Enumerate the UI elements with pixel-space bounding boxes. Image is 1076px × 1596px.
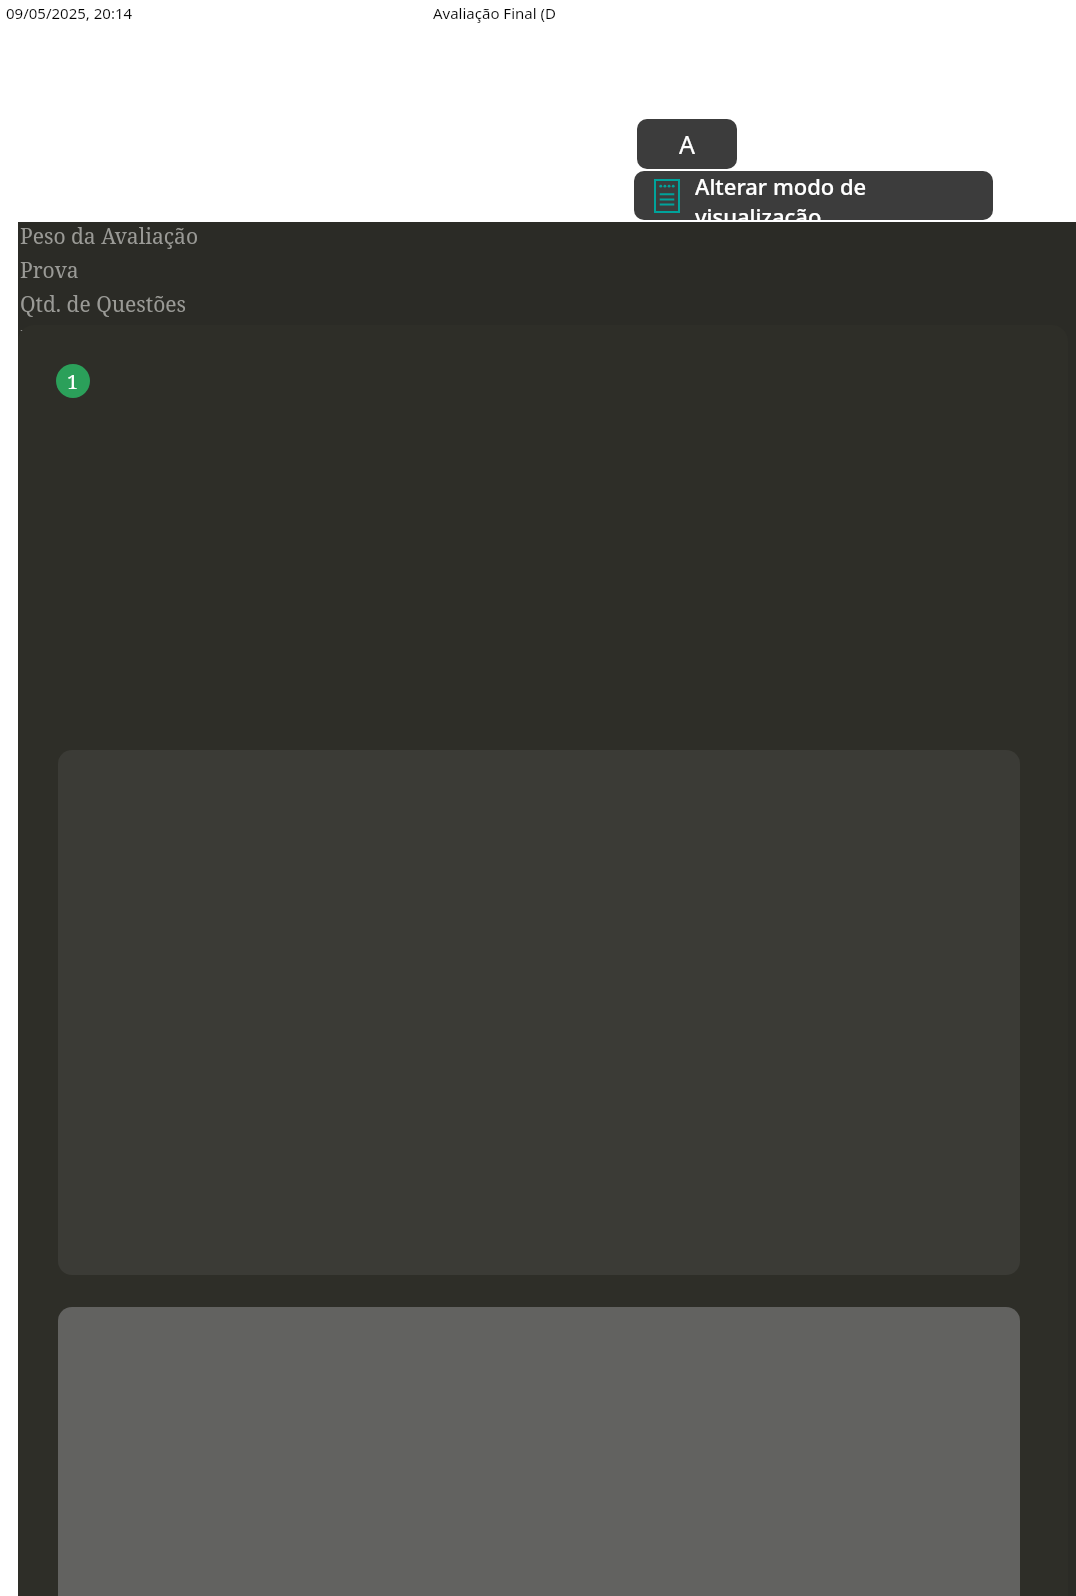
button[interactable]: 1 bbox=[18, 325, 1068, 1596]
staticText: Prova bbox=[20, 256, 79, 285]
button[interactable]: A bbox=[637, 119, 737, 169]
button[interactable]: Alterar modo de visualização bbox=[634, 171, 993, 220]
staticText: A bbox=[679, 127, 695, 161]
staticText: 09/05/2025, 20:14 bbox=[6, 3, 133, 23]
button[interactable]: 1 bbox=[56, 364, 90, 398]
staticText: Peso da Avaliação bbox=[20, 222, 198, 251]
staticText: Qtd. de Questões bbox=[20, 290, 187, 319]
staticText: Alterar modo de visualização bbox=[695, 171, 993, 220]
staticText: 1 bbox=[67, 368, 79, 395]
staticText: Avaliação Final (D bbox=[433, 3, 556, 23]
